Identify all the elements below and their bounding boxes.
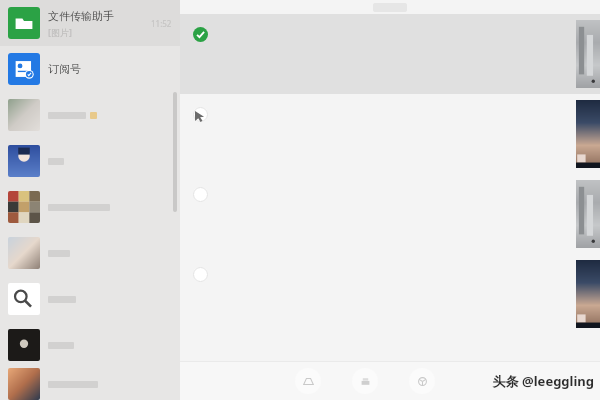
button[interactable] [0,138,180,184]
button[interactable]: Send to friend [295,368,321,394]
button[interactable] [0,322,180,368]
button[interactable]: Select item [193,27,208,42]
button[interactable] [0,92,180,138]
button[interactable]: Select item [193,187,208,202]
button[interactable] [0,230,180,276]
button[interactable] [0,184,180,230]
staticText: 头条 @leeggling [492,372,594,390]
button[interactable]: Save file [352,368,378,394]
staticText: [图片] [48,26,72,38]
button[interactable]: Select item [193,267,208,282]
button[interactable] [0,368,180,400]
staticText: 订阅号 [48,62,81,76]
staticText: 11:52 [151,18,172,29]
button[interactable]: Select item [180,174,600,254]
button[interactable] [0,276,180,322]
button[interactable]: Select item [180,14,600,94]
button[interactable]: Select item [193,107,208,122]
staticText: 文件传输助手 [48,9,114,23]
button[interactable]: 文件传输助手 [0,0,180,46]
button[interactable]: Select item [180,254,600,334]
button[interactable]: 订阅号 [0,46,180,92]
button[interactable]: More options [409,368,435,394]
button[interactable]: Select item [180,94,600,174]
